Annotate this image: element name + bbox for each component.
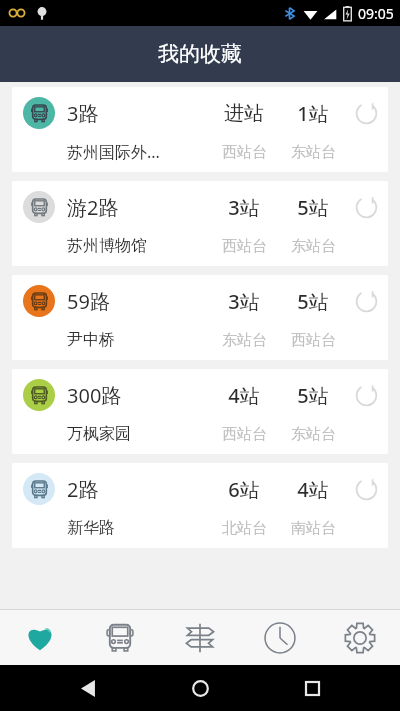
button[interactable]: 2路 [12, 463, 388, 548]
staticText: 6站 [228, 476, 260, 503]
button[interactable]: Transfer [160, 610, 240, 665]
staticText: 东站台 [291, 237, 336, 256]
button[interactable]: Refresh [344, 376, 388, 414]
button[interactable]: 59路 [12, 275, 388, 360]
staticText: 5站 [297, 194, 329, 221]
button[interactable]: Refresh [344, 470, 388, 508]
staticText: 西站台 [222, 143, 267, 162]
staticText: 进站 [224, 101, 264, 126]
button[interactable]: 3路 [12, 87, 388, 172]
staticText: 尹中桥 [67, 330, 115, 350]
button[interactable]: 游2路 [12, 181, 388, 266]
staticText: 西站台 [222, 425, 267, 444]
staticText: 苏州博物馆 [67, 236, 147, 256]
staticText: 西站台 [222, 237, 267, 256]
staticText: 5站 [297, 382, 329, 409]
staticText: 4站 [297, 476, 329, 503]
staticText: 新华路 [67, 518, 115, 538]
staticText: 3站 [228, 288, 260, 315]
button[interactable]: 300路 [12, 369, 388, 454]
staticText: 游2路 [67, 194, 119, 221]
staticText: 东站台 [291, 425, 336, 444]
staticText: 苏州国际外... [67, 141, 160, 163]
staticText: 3站 [228, 194, 260, 221]
button[interactable]: Recents [289, 665, 335, 711]
button[interactable]: Refresh [344, 282, 388, 320]
button[interactable]: Bus lines [80, 610, 160, 665]
staticText: 09:05 [358, 4, 394, 23]
staticText: 东站台 [222, 331, 267, 350]
button[interactable]: Refresh [344, 188, 388, 226]
staticText: 4站 [228, 382, 260, 409]
staticText: 北站台 [222, 519, 267, 538]
button[interactable]: Favorites [0, 610, 80, 665]
staticText: 300路 [67, 382, 122, 409]
staticText: 西站台 [291, 331, 336, 350]
staticText: 南站台 [291, 519, 336, 538]
staticText: 3路 [67, 100, 99, 127]
staticText: 东站台 [291, 143, 336, 162]
button[interactable]: Refresh [344, 94, 388, 132]
button[interactable]: Settings [320, 610, 400, 665]
button[interactable]: Back [66, 665, 112, 711]
staticText: 59路 [67, 288, 110, 315]
staticText: 1站 [297, 100, 329, 127]
staticText: 5站 [297, 288, 329, 315]
staticText: 我的收藏 [158, 41, 242, 67]
staticText: 万枫家园 [67, 424, 131, 444]
button[interactable]: Timetable [240, 610, 320, 665]
button[interactable]: Home [177, 665, 223, 711]
staticText: 2路 [67, 476, 99, 503]
